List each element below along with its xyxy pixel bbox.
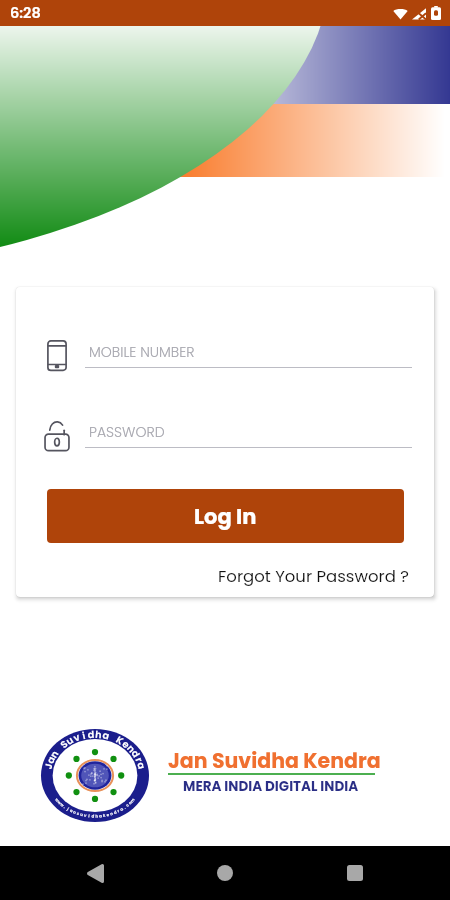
staticText: Forgot Your Password ?	[218, 565, 409, 588]
staticText: MOBILE NUMBER	[89, 342, 195, 362]
staticText: Jan Suvidha Kendra	[168, 746, 381, 775]
button[interactable]: Home	[198, 846, 252, 900]
button[interactable]: Forgot Your Password ?	[214, 561, 413, 592]
staticText: PASSWORD	[89, 422, 165, 442]
staticText: Log In	[194, 502, 257, 531]
button[interactable]: Back	[68, 846, 122, 900]
button[interactable]: Recent apps	[328, 846, 382, 900]
button[interactable]: Log In	[47, 489, 404, 543]
staticText: 6:28	[10, 3, 41, 23]
staticText: MERA INDIA DIGITAL INDIA	[183, 777, 359, 796]
